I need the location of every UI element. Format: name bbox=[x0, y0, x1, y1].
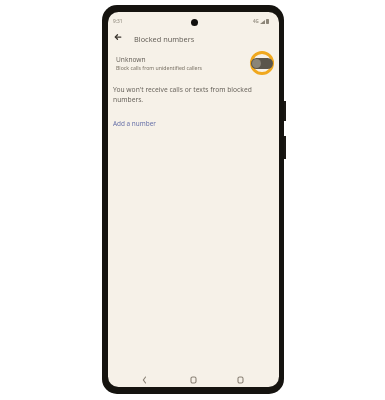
button[interactable]: Unknown bbox=[108, 50, 279, 76]
staticText: Add a number bbox=[113, 119, 156, 128]
staticText: 9:31 bbox=[113, 18, 123, 25]
button[interactable]: Block unknown callers toggle bbox=[246, 50, 278, 76]
button[interactable]: Recent apps bbox=[233, 373, 247, 387]
staticText: You won't receive calls or texts from bl… bbox=[113, 85, 253, 104]
staticText: Unknown bbox=[116, 55, 146, 64]
staticText: 4G bbox=[253, 18, 259, 24]
staticText: Block calls from unidentified callers bbox=[116, 64, 203, 71]
button[interactable]: Navigate up bbox=[109, 28, 127, 46]
button[interactable]: Add a number bbox=[111, 117, 158, 130]
button[interactable]: Home bbox=[186, 373, 200, 387]
button[interactable]: Back bbox=[137, 373, 151, 387]
staticText: Blocked numbers bbox=[134, 34, 195, 44]
